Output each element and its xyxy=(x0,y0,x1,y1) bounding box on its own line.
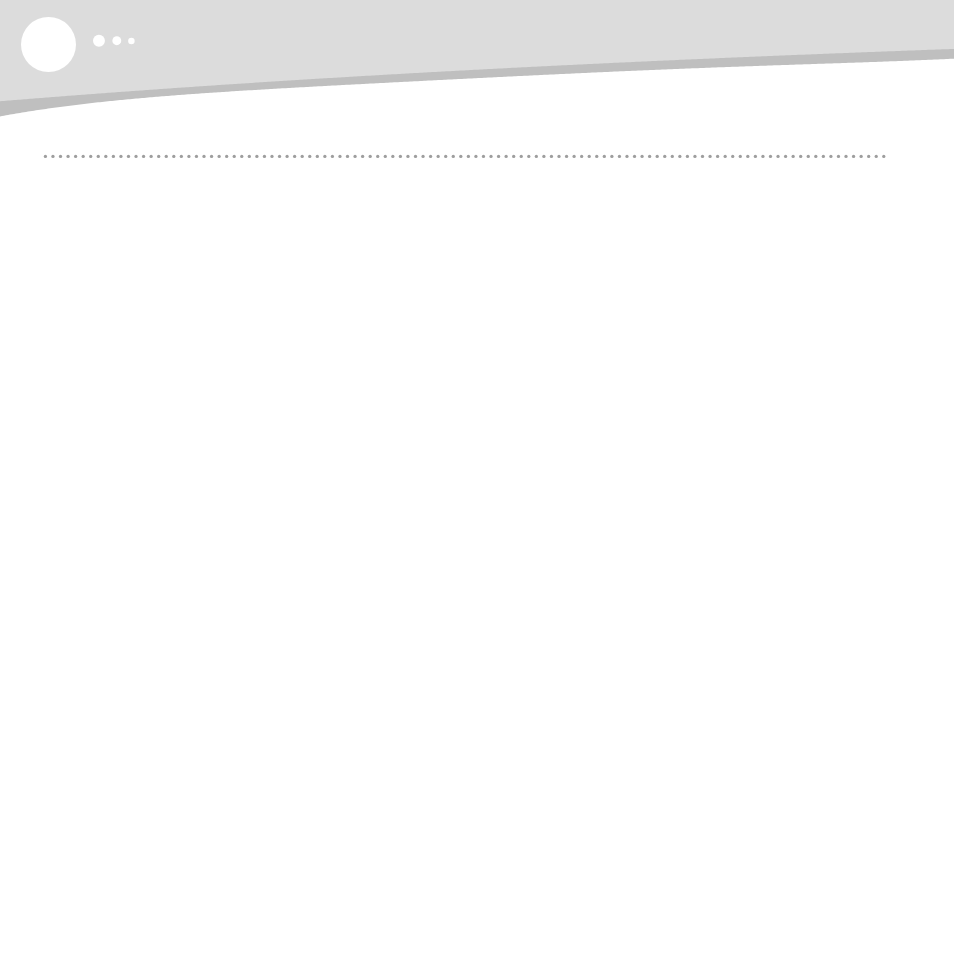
button[interactable]: Loading list item xyxy=(40,140,890,173)
button[interactable]: Profile xyxy=(21,17,76,72)
button[interactable]: Loading xyxy=(88,27,140,57)
